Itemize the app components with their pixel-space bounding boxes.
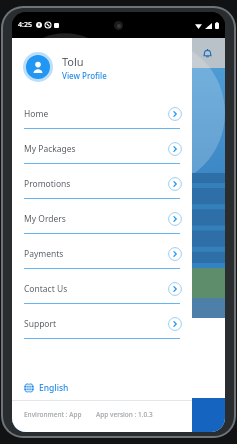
staticText: Environment : App [24, 410, 82, 419]
staticText: App version : 1.0.3 [96, 410, 153, 419]
button[interactable]: Support [12, 310, 192, 345]
button[interactable]: Contact Us [12, 275, 192, 310]
button[interactable]: My Packages [12, 135, 192, 170]
staticText: My Packages [24, 143, 168, 155]
button[interactable]: Payments [12, 240, 192, 275]
staticText: 4:25 [18, 20, 32, 30]
staticText: Home [24, 108, 168, 120]
staticText: My Orders [24, 213, 168, 225]
button[interactable]: My Orders [12, 205, 192, 240]
staticText: Support [24, 318, 168, 330]
button[interactable]: Tolu [12, 48, 192, 86]
button[interactable]: Notifications [197, 43, 217, 63]
staticText: Promotions [24, 178, 168, 190]
button[interactable]: Home [12, 100, 192, 135]
staticText: Payments [24, 248, 168, 260]
button[interactable]: English [12, 378, 192, 400]
staticText: English [39, 382, 69, 394]
staticText: View Profile [62, 70, 107, 81]
staticText: Contact Us [24, 283, 168, 295]
staticText: Tolu [62, 54, 84, 69]
button[interactable]: Promotions [12, 170, 192, 205]
